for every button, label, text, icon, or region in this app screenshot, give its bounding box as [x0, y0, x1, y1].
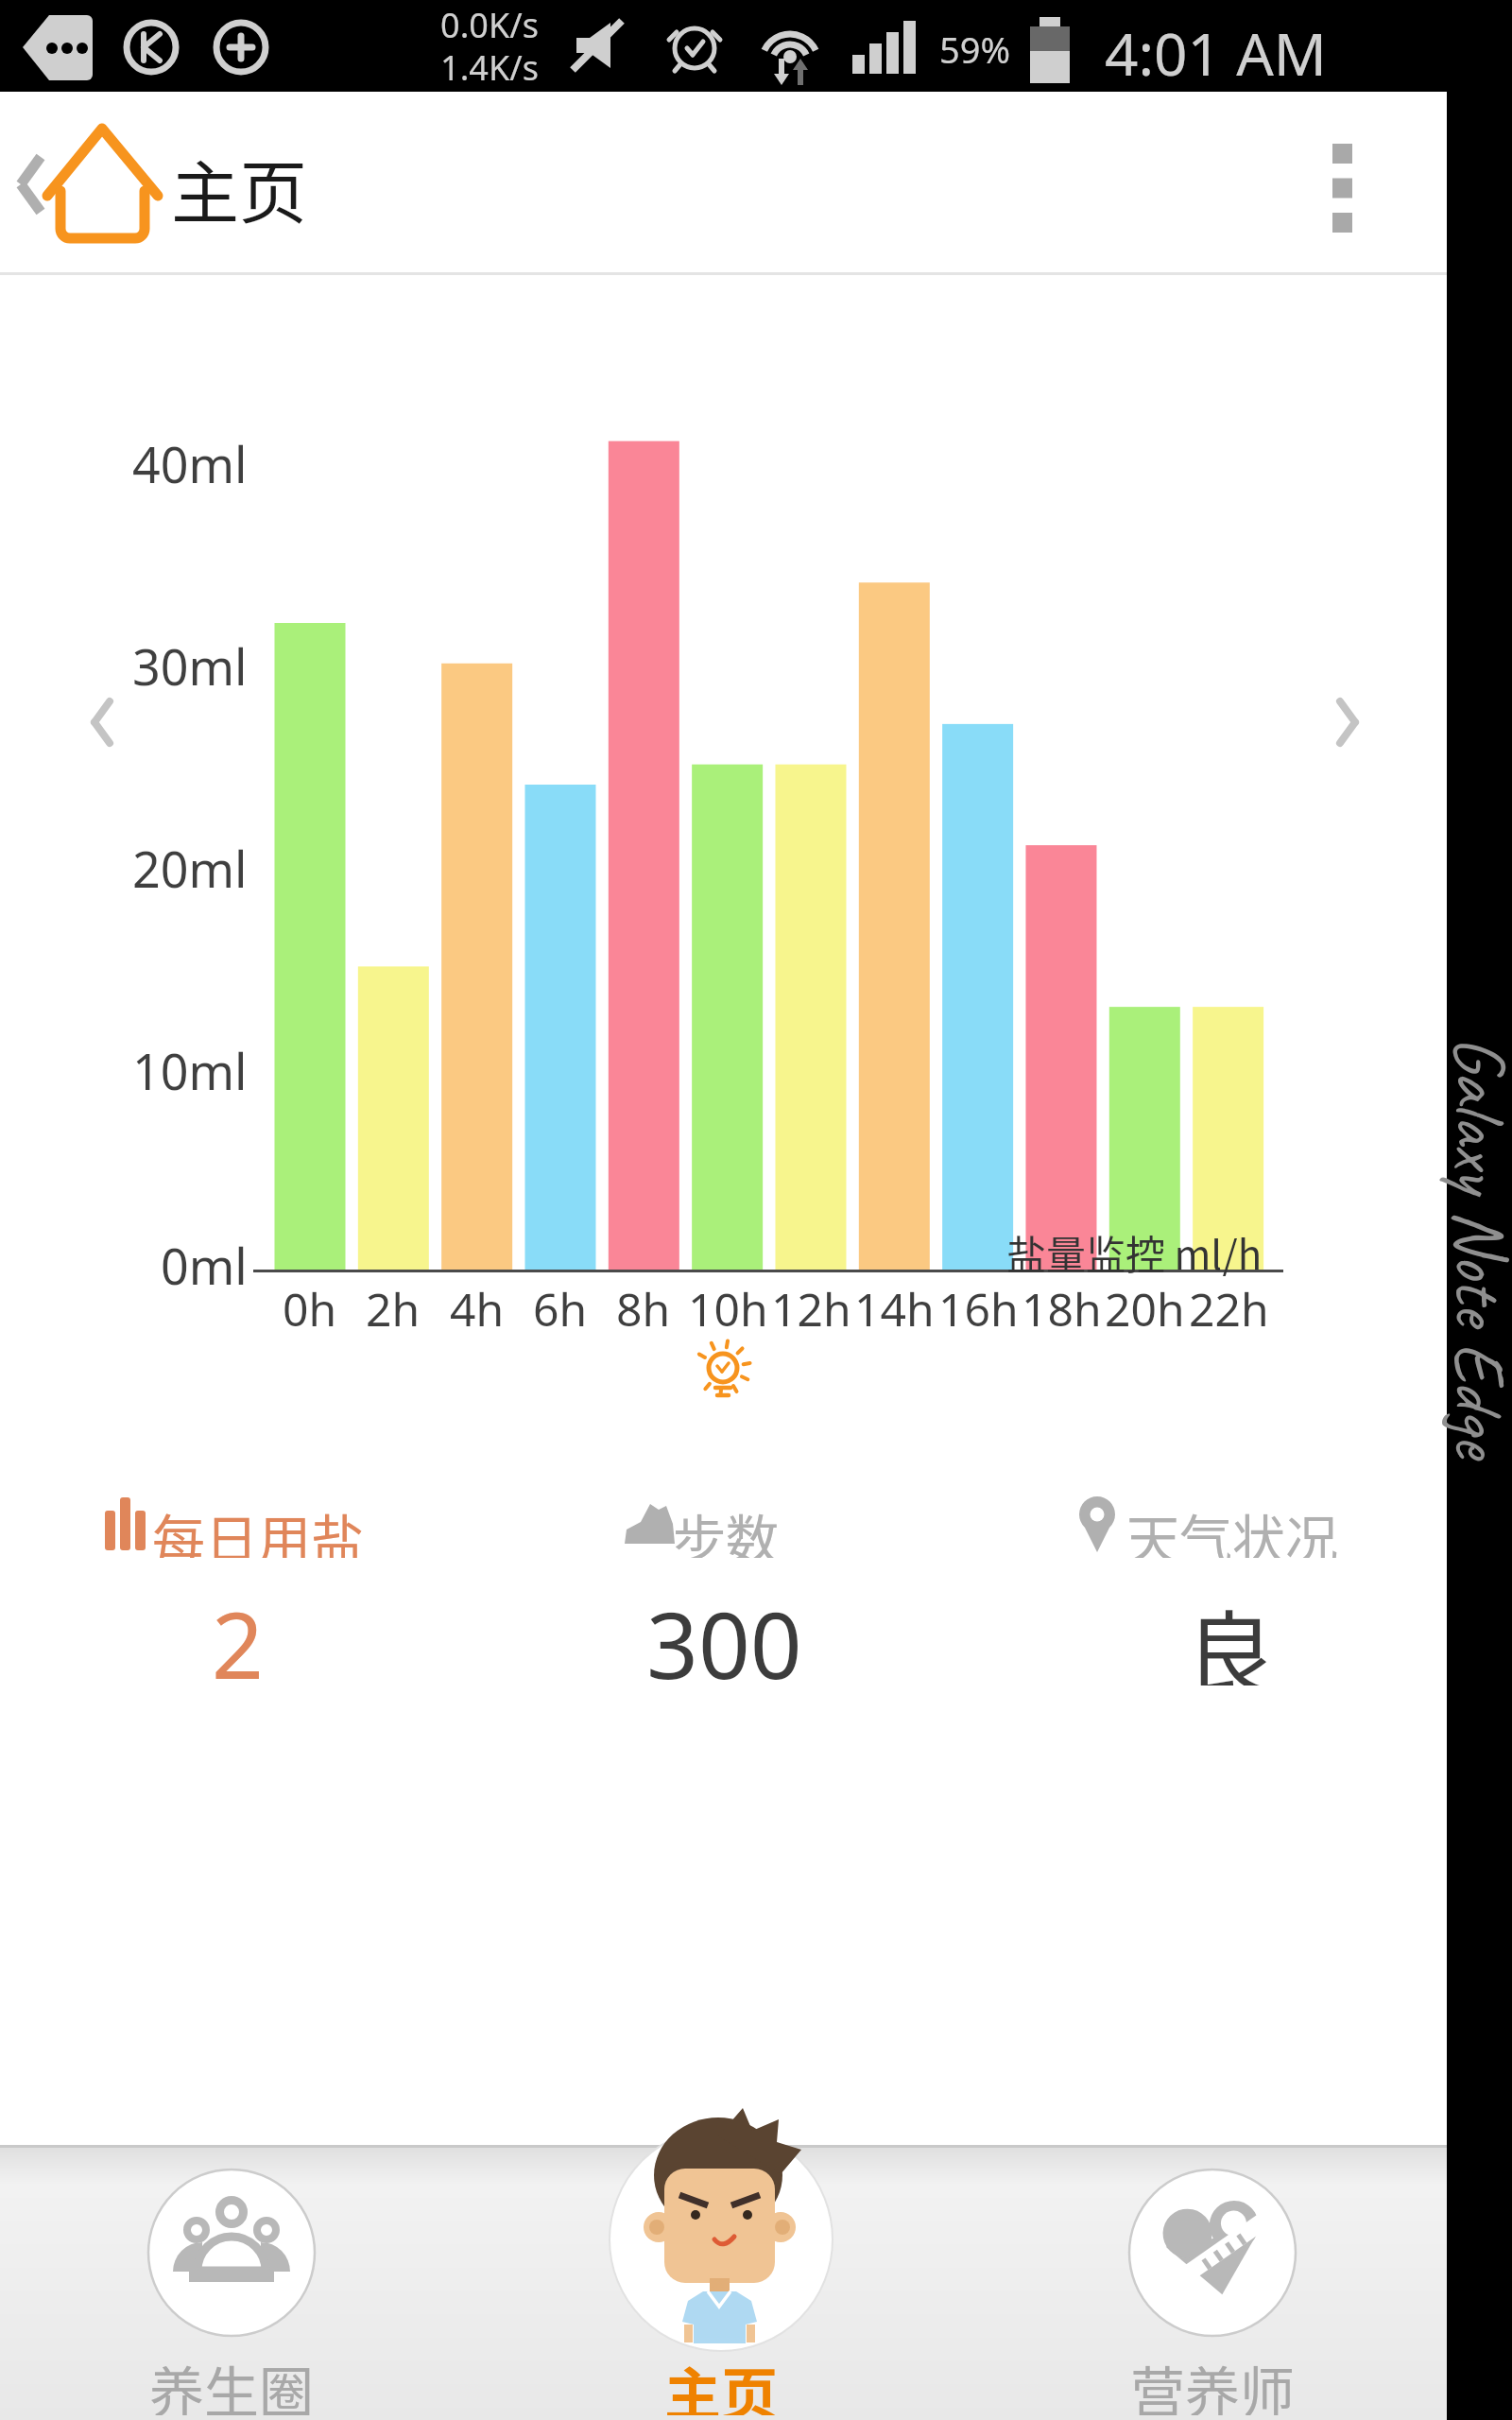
button[interactable]: 每日用盐	[149, 1497, 367, 1558]
staticText: 4:01 AM	[1105, 13, 1327, 85]
staticText: 0ml	[161, 1232, 248, 1294]
staticText: 20h	[1105, 1278, 1185, 1339]
staticText: 14h	[854, 1278, 935, 1339]
staticText: 0.0K/s 1.4K/s	[440, 2, 539, 91]
staticText: 4h	[450, 1278, 505, 1339]
button[interactable]: 营养师	[1090, 2349, 1335, 2415]
button[interactable]	[8, 123, 168, 255]
staticText: 营养师	[1130, 2349, 1296, 2415]
staticText: Galaxy Note Edge	[1434, 1036, 1512, 1458]
button[interactable]	[118, 2160, 345, 2420]
staticText: 主页	[664, 2349, 778, 2415]
staticText: 18h	[1022, 1278, 1102, 1339]
staticText: 2h	[366, 1278, 421, 1339]
staticText: 30ml	[132, 632, 248, 695]
staticText: 300	[646, 1582, 802, 1685]
button[interactable]	[600, 2122, 842, 2420]
staticText: 22h	[1189, 1278, 1269, 1339]
staticText: 天气状况	[1126, 1497, 1338, 1558]
staticText: 8h	[616, 1278, 671, 1339]
button[interactable]: 主页	[627, 2349, 816, 2415]
staticText: 0h	[283, 1278, 337, 1339]
staticText: 10ml	[132, 1037, 248, 1099]
button[interactable]	[1310, 123, 1376, 255]
staticText: 10h	[688, 1278, 768, 1339]
button[interactable]	[1300, 675, 1395, 769]
staticText: 16h	[938, 1278, 1019, 1339]
staticText: 20ml	[132, 835, 248, 897]
staticText: 12h	[771, 1278, 851, 1339]
button[interactable]	[1099, 2160, 1326, 2420]
staticText: 养生圈	[149, 2349, 315, 2415]
staticText: 盐量监控 ml/h	[1006, 1223, 1263, 1276]
staticText: 良	[1184, 1582, 1275, 1685]
button[interactable]: 步数	[669, 1497, 782, 1558]
button[interactable]	[685, 1330, 761, 1406]
staticText: 6h	[533, 1278, 588, 1339]
staticText: 40ml	[132, 430, 248, 493]
button[interactable]	[66, 675, 161, 769]
staticText: 每日用盐	[152, 1497, 364, 1558]
staticText: 59%	[939, 25, 1011, 74]
button[interactable]: 养生圈	[109, 2349, 354, 2415]
staticText: 2	[212, 1582, 264, 1685]
button[interactable]: 天气状况	[1124, 1497, 1341, 1558]
staticText: 步数	[673, 1497, 779, 1558]
staticText: 主页	[171, 138, 308, 233]
button[interactable]: 主页	[145, 138, 334, 233]
